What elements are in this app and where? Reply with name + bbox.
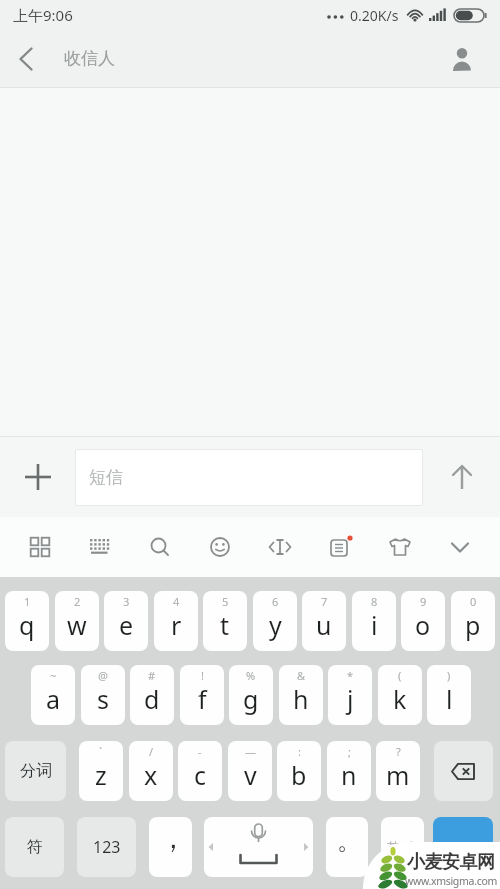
staticText: 上午9:06 [13, 5, 73, 25]
staticText: v [244, 758, 257, 792]
button[interactable]: % [229, 665, 273, 725]
staticText: c [194, 758, 207, 792]
staticText: ; [348, 744, 351, 759]
button[interactable] [440, 527, 480, 567]
staticText: 123 [93, 836, 121, 858]
button[interactable]: ! [180, 665, 224, 725]
staticText: b [291, 758, 307, 792]
button[interactable] [432, 30, 492, 87]
staticText: t [220, 608, 230, 642]
button[interactable] [433, 817, 493, 877]
staticText: a [46, 682, 61, 716]
staticText: z [95, 758, 107, 792]
staticText: 7 [321, 594, 328, 609]
button[interactable]: 9 [401, 591, 445, 651]
staticText: h [293, 682, 309, 716]
staticText: # [148, 668, 156, 683]
button[interactable]: 8 [352, 591, 396, 651]
staticText: * [347, 668, 354, 683]
button[interactable]: : [277, 741, 321, 801]
button[interactable]: # [130, 665, 174, 725]
button[interactable]: 。 [326, 817, 368, 877]
button[interactable] [80, 527, 120, 567]
button[interactable]: 5 [203, 591, 247, 651]
button[interactable]: - [178, 741, 222, 801]
button[interactable]: & [279, 665, 323, 725]
staticText: 2 [74, 594, 81, 609]
staticText: ~ [50, 668, 57, 683]
button[interactable]: * [328, 665, 372, 725]
button[interactable]: 分词 [5, 741, 66, 801]
staticText: 1 [24, 594, 31, 609]
staticText: 0 [470, 594, 477, 609]
button[interactable] [200, 527, 240, 567]
staticText: g [243, 682, 259, 716]
staticText: 分词 [20, 761, 52, 781]
button[interactable]: 3 [104, 591, 148, 651]
staticText: j [347, 682, 354, 716]
button[interactable] [320, 527, 360, 567]
staticText: 5 [222, 594, 229, 609]
staticText: ， [159, 821, 187, 856]
button[interactable]: ( [378, 665, 422, 725]
button[interactable] [140, 527, 180, 567]
staticText: - [198, 744, 202, 759]
button[interactable] [434, 741, 493, 801]
button[interactable]: 1 [5, 591, 49, 651]
button[interactable]: 2 [55, 591, 99, 651]
button[interactable]: 0 [451, 591, 495, 651]
button[interactable] [423, 437, 500, 517]
button[interactable]: 6 [253, 591, 297, 651]
staticText: r [171, 608, 182, 642]
button[interactable]: ) [427, 665, 471, 725]
staticText: l [446, 682, 453, 716]
staticText: u [316, 608, 332, 642]
staticText: % [246, 668, 256, 683]
staticText: — [245, 744, 256, 759]
button[interactable]: @ [81, 665, 125, 725]
staticText: ! [201, 668, 204, 683]
staticText: q [19, 608, 35, 642]
staticText: & [297, 668, 306, 683]
staticText: o [415, 608, 431, 642]
staticText: d [144, 682, 160, 716]
button[interactable]: / [129, 741, 173, 801]
staticText: p [465, 608, 481, 642]
button[interactable]: ; [327, 741, 371, 801]
staticText: y [269, 608, 282, 642]
button[interactable] [0, 30, 52, 87]
staticText: ` [99, 744, 103, 759]
button[interactable]: 123 [77, 817, 136, 877]
staticText: 6 [272, 594, 279, 609]
staticText: @ [98, 668, 108, 683]
staticText: 4 [173, 594, 180, 609]
staticText: 9 [420, 594, 427, 609]
button[interactable]: ， [149, 817, 192, 877]
button[interactable] [20, 527, 60, 567]
button[interactable]: 英/中 [381, 817, 424, 877]
button[interactable]: — [228, 741, 272, 801]
button[interactable]: 符 [5, 817, 64, 877]
staticText: / [149, 744, 154, 759]
staticText: ? [396, 744, 401, 759]
button[interactable] [260, 527, 300, 567]
staticText: f [198, 682, 207, 716]
button[interactable]: ? [376, 741, 420, 801]
button[interactable]: 短信 [75, 449, 423, 506]
button[interactable] [204, 817, 313, 877]
staticText: ( [398, 668, 402, 683]
button[interactable]: 4 [154, 591, 198, 651]
button[interactable] [0, 437, 75, 517]
staticText: i [371, 608, 378, 642]
button[interactable]: 7 [302, 591, 346, 651]
staticText: 短信 [89, 467, 123, 488]
button[interactable]: ~ [31, 665, 75, 725]
button[interactable]: ` [79, 741, 123, 801]
staticText: s [97, 682, 109, 716]
staticText: www.xmsigma.com [405, 874, 497, 888]
button[interactable] [380, 527, 420, 567]
staticText: k [393, 682, 407, 716]
staticText: w [67, 608, 87, 642]
staticText: 收信人 [64, 48, 115, 69]
staticText: n [341, 758, 357, 792]
